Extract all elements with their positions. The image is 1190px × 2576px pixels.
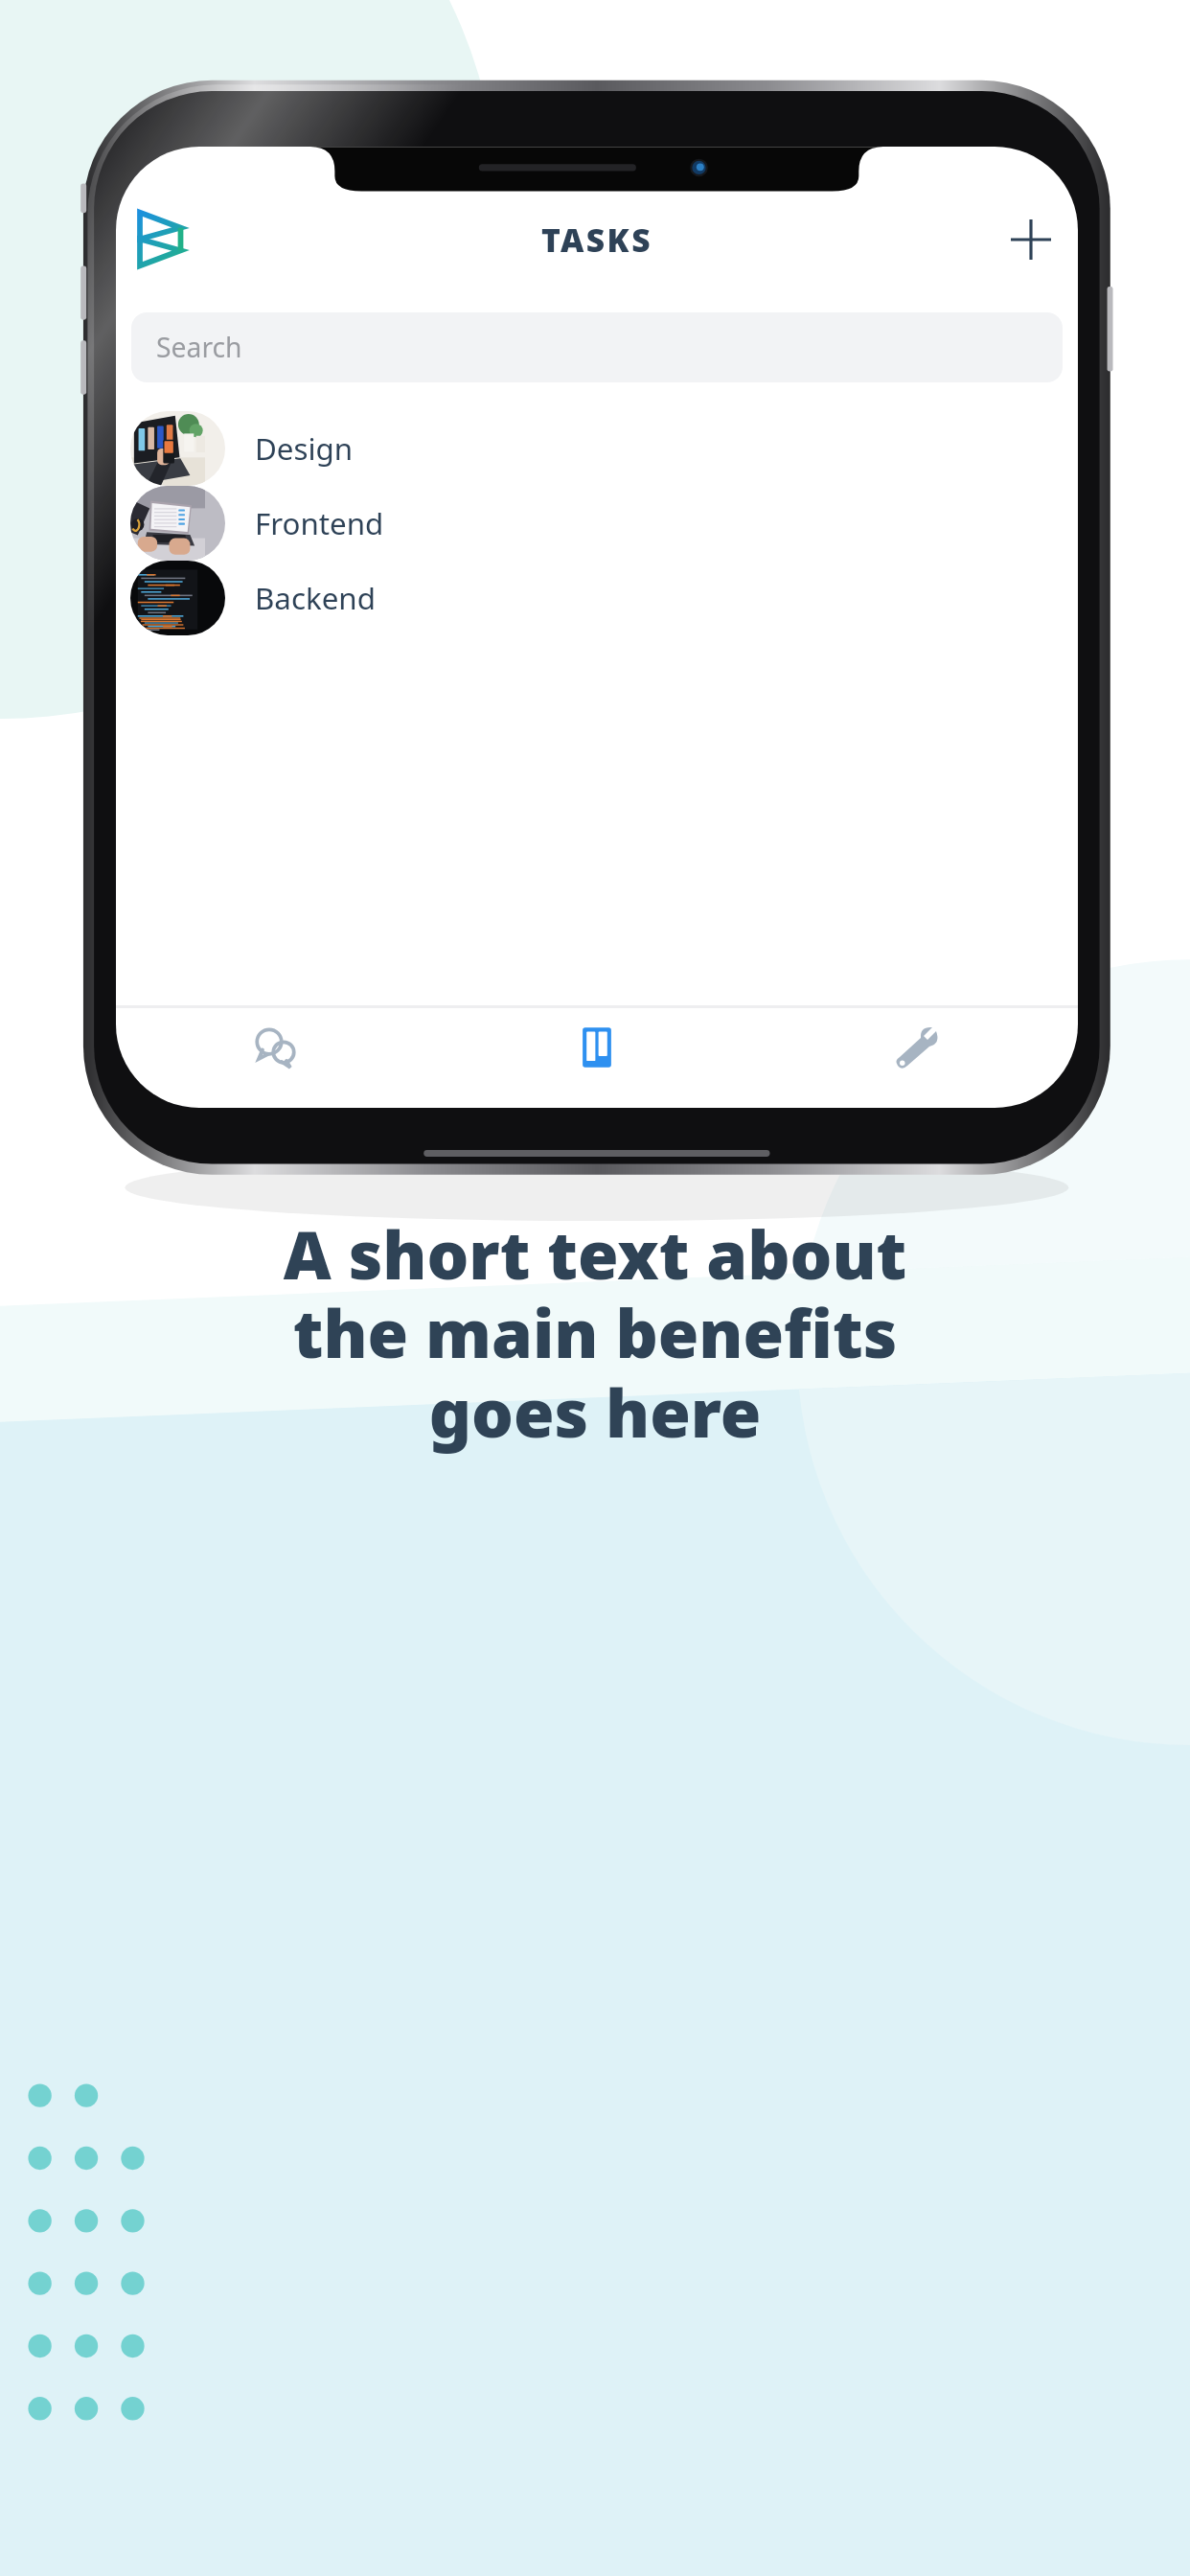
staticText: Frontend	[255, 503, 384, 544]
button[interactable]: Frontend	[116, 486, 1078, 561]
button[interactable]: App logo	[135, 211, 183, 267]
staticText: Search	[156, 329, 242, 366]
staticText: Design	[255, 428, 354, 470]
staticText: A short text about the main benefits goe…	[113, 1208, 1077, 1457]
button[interactable]: Search	[131, 312, 1063, 382]
button[interactable]: Settings	[757, 1008, 1078, 1086]
button[interactable]: Boards	[436, 1008, 757, 1086]
staticText: TASKS	[541, 218, 652, 262]
button[interactable]: Backend	[116, 561, 1078, 635]
staticText: Backend	[255, 578, 376, 619]
button[interactable]: Design	[116, 411, 1078, 486]
button[interactable]: Chats	[116, 1008, 436, 1086]
button[interactable]: Add task	[1004, 213, 1057, 265]
